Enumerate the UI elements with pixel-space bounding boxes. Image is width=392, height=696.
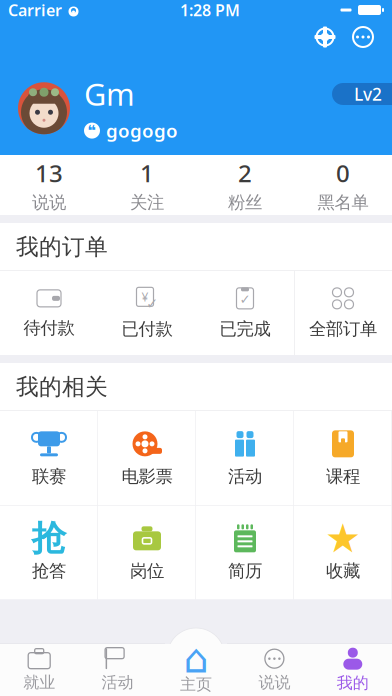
staticText: ❝	[87, 122, 96, 139]
button[interactable]: 课程	[294, 411, 392, 505]
staticText: 1	[140, 157, 154, 189]
staticText: ✓	[146, 295, 158, 312]
staticText: Gm	[84, 73, 135, 114]
staticText: 我的	[337, 673, 369, 693]
staticText: 我的相关	[16, 373, 108, 401]
staticText: Carrier	[8, 0, 62, 21]
staticText: ¥	[141, 289, 148, 305]
button[interactable]: ⌂	[157, 644, 235, 696]
staticText: 已付款	[121, 318, 172, 340]
staticText: 电影票	[121, 466, 172, 487]
staticText: ⌂	[183, 636, 208, 681]
button[interactable]: 待付款	[0, 271, 98, 355]
button[interactable]: 简历	[196, 505, 294, 599]
staticText: 关注	[130, 192, 164, 213]
button[interactable]: 就业	[0, 644, 78, 696]
staticText: ★	[325, 516, 361, 561]
staticText: 0	[336, 157, 350, 189]
staticText: 岗位	[130, 560, 164, 582]
staticText: 13	[35, 157, 63, 189]
button[interactable]: 说说	[235, 644, 314, 696]
button[interactable]: 0	[294, 155, 392, 215]
staticText: 联赛	[32, 466, 66, 487]
button[interactable]: 活动	[196, 411, 294, 505]
button[interactable]: 活动	[78, 644, 157, 696]
button[interactable]: 电影票	[98, 411, 196, 505]
staticText: 全部订单	[309, 318, 377, 340]
button[interactable]: Lv2	[332, 83, 392, 105]
staticText: 主页	[180, 675, 212, 694]
staticText: gogogo	[106, 118, 178, 143]
staticText: 抢答	[32, 560, 66, 582]
button[interactable]: 我的	[314, 644, 392, 696]
staticText: ✓	[239, 292, 250, 307]
button[interactable]: Messages	[344, 22, 382, 52]
staticText: 已完成	[219, 318, 270, 340]
button[interactable]: 联赛	[0, 411, 98, 505]
button[interactable]: 2	[196, 155, 294, 215]
button[interactable]: Settings	[306, 22, 344, 52]
button[interactable]: 抢	[0, 505, 98, 599]
staticText: 说说	[258, 673, 290, 692]
button[interactable]: ✓	[196, 271, 294, 355]
button[interactable]: ¥	[98, 271, 196, 355]
staticText: 粉丝	[228, 192, 262, 213]
staticText: 收藏	[326, 560, 360, 582]
staticText: 简历	[228, 560, 262, 582]
staticText: 1:28 PM	[180, 0, 240, 21]
staticText: 课程	[326, 466, 360, 487]
button[interactable]: 13	[0, 155, 98, 215]
staticText: Lv2	[354, 82, 382, 105]
staticText: 我的订单	[16, 233, 108, 261]
button[interactable]: Profile photo	[18, 82, 70, 134]
staticText: 抢	[31, 517, 66, 560]
staticText: 待付款	[23, 317, 74, 339]
staticText: 说说	[32, 192, 66, 213]
staticText: 2	[238, 157, 252, 189]
button[interactable]: 全部订单	[294, 271, 392, 355]
staticText: 就业	[23, 673, 55, 692]
button[interactable]: 1	[98, 155, 196, 215]
button[interactable]: 岗位	[98, 505, 196, 599]
staticText: 活动	[228, 466, 262, 487]
button[interactable]: ★	[294, 505, 392, 599]
staticText: 活动	[102, 673, 134, 692]
staticText: 黑名单	[317, 192, 368, 213]
